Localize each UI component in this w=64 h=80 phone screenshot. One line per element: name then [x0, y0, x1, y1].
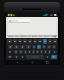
button[interactable]: Key: [42, 45, 46, 49]
button[interactable]: Key: [51, 55, 57, 59]
button[interactable]: Key: [8, 45, 13, 49]
button[interactable]: Key: [13, 39, 17, 44]
button[interactable]: Key: [40, 50, 43, 54]
button[interactable]: Key: [20, 45, 25, 49]
button[interactable]: Key: [33, 39, 37, 44]
button[interactable]: Key: [52, 50, 57, 54]
button[interactable]: Key: [47, 45, 51, 49]
button[interactable]: Key: [7, 39, 12, 44]
button[interactable]: Key: [32, 45, 36, 49]
button[interactable]: Key: [45, 55, 50, 59]
button[interactable]: Key: [53, 39, 57, 44]
button[interactable]: Key: [20, 55, 25, 59]
button[interactable]: Key: [48, 39, 52, 44]
button[interactable]: Key: [18, 39, 22, 44]
button[interactable]: Key: [28, 50, 31, 54]
button[interactable]: Key: [14, 45, 19, 49]
button[interactable]: Key: [14, 50, 18, 54]
button[interactable]: Key: [43, 39, 47, 44]
button[interactable]: Key: [48, 50, 51, 54]
button[interactable]: Key: [36, 50, 39, 54]
button[interactable]: Key: [28, 39, 32, 44]
button[interactable]: Key: [32, 50, 35, 54]
button[interactable]: Key: [44, 50, 47, 54]
button[interactable]: Key: [7, 55, 13, 59]
button[interactable]: Key: [19, 50, 23, 54]
button[interactable]: Home: [28, 60, 36, 65]
button[interactable]: Key: [52, 45, 56, 49]
button[interactable]: Key: [24, 50, 27, 54]
button[interactable]: Key: [38, 39, 42, 44]
button[interactable]: Recents: [43, 60, 51, 65]
button[interactable]: Back: [13, 60, 21, 65]
button[interactable]: Key: [26, 55, 44, 59]
button[interactable]: Key: [26, 45, 31, 49]
button[interactable]: [6, 35, 58, 38]
button[interactable]: Key: [23, 39, 27, 44]
button[interactable]: [8, 19, 30, 23]
button[interactable]: Key: [7, 50, 13, 54]
button[interactable]: Key: [37, 45, 41, 49]
button[interactable]: Key: [14, 55, 19, 59]
